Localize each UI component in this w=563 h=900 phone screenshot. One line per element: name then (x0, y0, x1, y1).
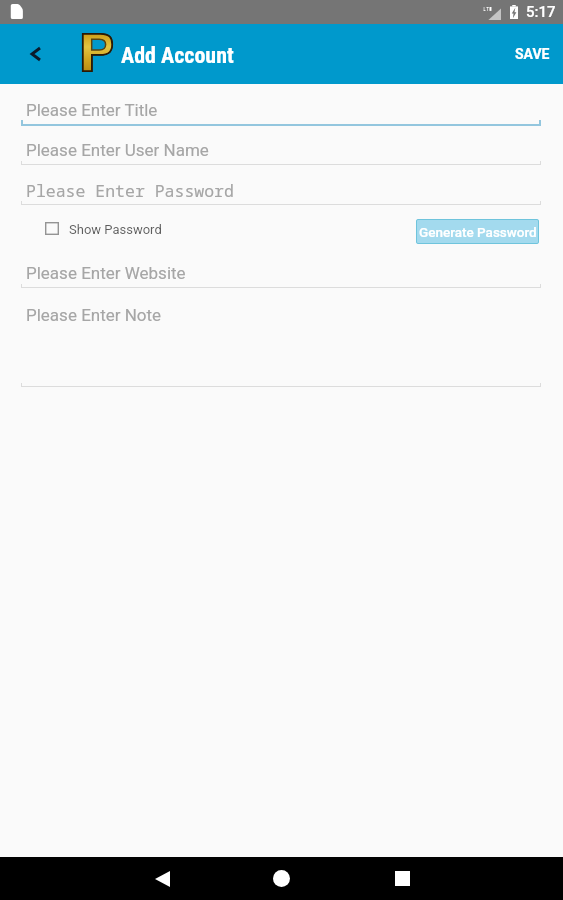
staticText: SAVE (515, 46, 550, 62)
button[interactable]: Please Enter Password (21, 176, 541, 204)
staticText: Please Enter Password (26, 179, 234, 201)
button[interactable]: Back (132, 857, 192, 900)
button[interactable]: SAVE (500, 32, 563, 76)
staticText: Add Account (121, 43, 234, 69)
button[interactable]: Please Enter Note (21, 301, 541, 329)
staticText: Generate Password (419, 224, 537, 240)
staticText: Please Enter Title (26, 100, 158, 120)
staticText: Please Enter Website (26, 263, 186, 283)
button[interactable]: Back (14, 32, 58, 76)
staticText: Please Enter Note (26, 305, 162, 325)
button[interactable]: Recent apps (372, 857, 432, 900)
button[interactable]: Generate Password (416, 219, 539, 244)
staticText: Please Enter User Name (26, 140, 209, 160)
staticText: 5:17 (526, 3, 556, 21)
button[interactable]: Please Enter Title (21, 96, 541, 124)
button[interactable]: Please Enter Website (21, 259, 541, 287)
button[interactable]: Home (251, 857, 311, 900)
staticText: Show Password (69, 222, 162, 237)
button[interactable]: Show Password (45, 217, 162, 238)
button[interactable]: Please Enter User Name (21, 136, 541, 164)
